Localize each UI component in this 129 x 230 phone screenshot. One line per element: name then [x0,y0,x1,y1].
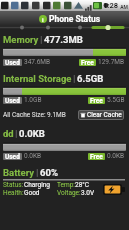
staticText: 28°C [75,181,89,189]
staticText: 129.7MB [98,58,125,66]
staticText: | [15,128,18,139]
staticText: 0.0KB [19,128,45,139]
staticText: Charging [24,181,50,189]
staticText: 1:28 [103,1,119,10]
staticText: Voltage: [57,189,81,197]
staticText: | [73,73,76,84]
staticText: 60% [40,167,58,178]
staticText: All Cache Size: 9.1MB [3,111,66,119]
staticText: Temp: [57,181,75,189]
staticText: 3.0V [81,189,95,197]
staticText: Good [24,189,40,197]
staticText: dd [3,128,14,139]
staticText: 477.3MB [44,34,83,45]
staticText: Used [5,97,20,104]
staticText: Internal Storage [3,73,72,84]
staticText: Battery [3,167,35,178]
staticText: 6.5GB [77,73,104,84]
staticText: | [36,167,39,178]
staticText: 347.6MB [24,58,51,66]
staticText: Memory [3,34,39,45]
staticText: 5.5GB [107,96,125,104]
staticText: Health: [3,189,24,197]
other: Battery charging [103,184,125,195]
staticText: Used [5,153,20,160]
button[interactable]: Clear Cache [78,110,124,120]
staticText: 0.0KB [24,152,42,160]
staticText: Free [90,97,103,104]
staticText: AM [119,4,128,10]
staticText: Free [90,153,103,160]
staticText: i [42,16,44,23]
staticText: | [40,34,43,45]
staticText: 1.0GB [24,96,42,104]
staticText: Status: [3,181,24,189]
staticText: 0.0KB [107,152,125,160]
staticText: Free [81,59,94,66]
staticText: Clear Cache [87,111,122,119]
staticText: Phone Status [49,14,101,24]
staticText: Used [5,59,20,66]
